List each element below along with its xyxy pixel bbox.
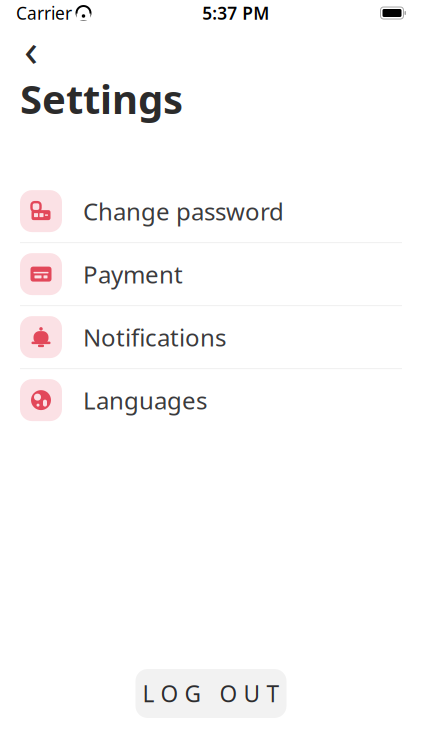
- button[interactable]: Change password: [0, 180, 422, 243]
- button[interactable]: Notifications: [0, 306, 422, 369]
- staticText: Carrier: [16, 1, 72, 24]
- staticText: Languages: [83, 384, 207, 416]
- staticText: Payment: [83, 258, 183, 290]
- button[interactable]: L O G O U T: [135, 669, 286, 718]
- staticText: Notifications: [83, 321, 226, 353]
- staticText: L O G O U T: [142, 678, 279, 708]
- button[interactable]: Languages: [0, 369, 422, 432]
- staticText: 5:37 PM: [202, 1, 269, 24]
- button[interactable]: Back: [14, 32, 48, 66]
- button[interactable]: Payment: [0, 243, 422, 306]
- staticText: Change password: [83, 195, 284, 227]
- staticText: ‹: [24, 19, 38, 79]
- staticText: Settings: [20, 72, 183, 125]
